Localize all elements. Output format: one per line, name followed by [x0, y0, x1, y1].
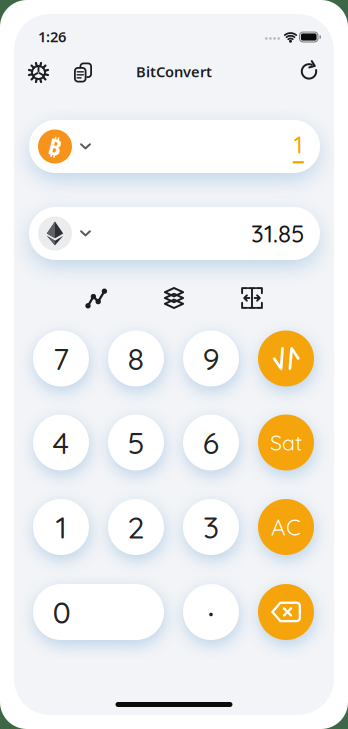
- button[interactable]: 6: [183, 414, 239, 470]
- staticText: 7: [53, 339, 69, 378]
- staticText: 31.85: [251, 218, 304, 248]
- staticText: 2: [127, 508, 144, 546]
- button[interactable]: Satoshi: [258, 414, 314, 470]
- button[interactable]: 3: [183, 499, 239, 555]
- button[interactable]: 1: [33, 499, 89, 555]
- button[interactable]: 31.85: [29, 207, 320, 260]
- staticText: 6: [202, 423, 219, 462]
- staticText: 0: [52, 593, 70, 631]
- button[interactable]: Resize: [237, 283, 267, 313]
- staticText: 5: [127, 423, 144, 462]
- staticText: 1: [55, 508, 66, 546]
- button[interactable]: All clear: [258, 499, 314, 555]
- staticText: BitConvert: [136, 62, 212, 81]
- button[interactable]: ₿: [29, 120, 320, 173]
- staticText: 8: [127, 339, 144, 378]
- button[interactable]: Decimal point: [183, 584, 239, 640]
- button[interactable]: Copy: [69, 58, 97, 86]
- button[interactable]: 9: [183, 330, 239, 386]
- button[interactable]: Swap: [258, 330, 314, 386]
- button[interactable]: 7: [33, 330, 89, 386]
- button[interactable]: 0: [33, 584, 164, 640]
- staticText: 1: [294, 130, 303, 160]
- staticText: AC: [271, 513, 301, 541]
- button[interactable]: 2: [108, 499, 164, 555]
- button[interactable]: Chart: [81, 283, 111, 313]
- button[interactable]: Settings: [23, 57, 53, 87]
- staticText: 9: [202, 339, 219, 378]
- staticText: 4: [52, 423, 69, 462]
- button[interactable]: Delete: [258, 584, 314, 640]
- staticText: Sat: [270, 429, 302, 456]
- button[interactable]: Refresh: [295, 56, 323, 84]
- staticText: 3: [203, 508, 219, 546]
- button[interactable]: 5: [108, 414, 164, 470]
- staticText: ₿: [48, 131, 61, 161]
- button[interactable]: Layers: [159, 283, 189, 313]
- staticText: 1:26: [38, 27, 66, 46]
- button[interactable]: 4: [33, 414, 89, 470]
- button[interactable]: 8: [108, 330, 164, 386]
